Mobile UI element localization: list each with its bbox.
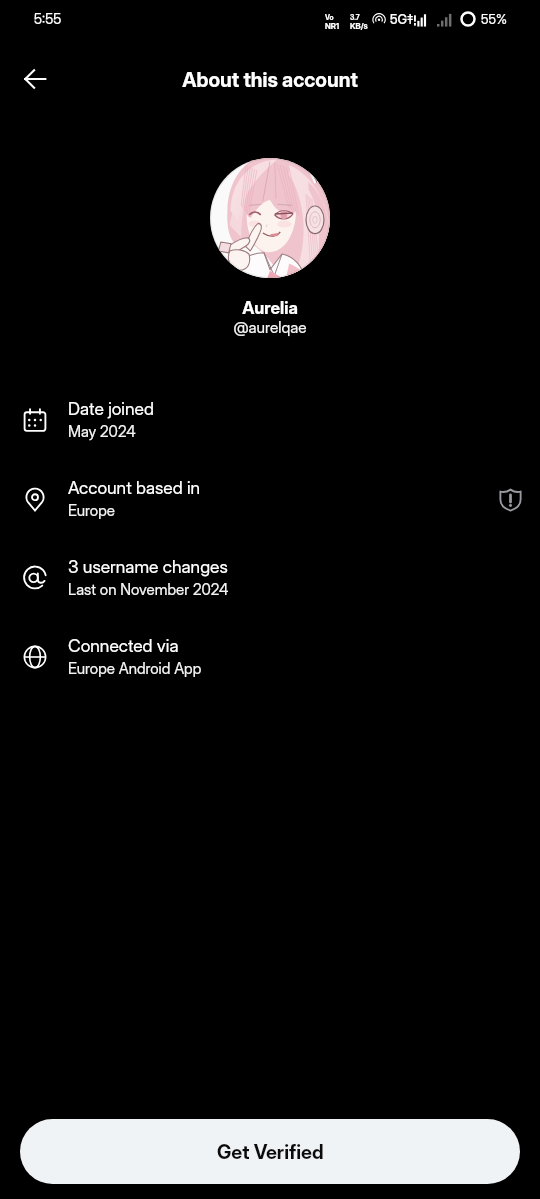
staticText: Account based in xyxy=(68,477,201,498)
staticText: 3.7 xyxy=(350,13,360,21)
staticText: NR1 xyxy=(325,21,340,31)
staticText: 5G‡ xyxy=(390,11,414,27)
button[interactable]: Date joined xyxy=(0,398,540,477)
staticText: Last on November 2024 xyxy=(68,580,229,598)
staticText: Vo xyxy=(325,13,334,21)
staticText: Europe xyxy=(68,501,115,519)
staticText: Date joined xyxy=(68,398,154,419)
staticText: 55% xyxy=(481,11,507,27)
staticText: Aurelia xyxy=(0,298,540,319)
button[interactable]: Account information xyxy=(492,481,528,517)
button[interactable]: Back xyxy=(13,57,57,101)
button[interactable]: Get Verified xyxy=(20,1119,520,1184)
staticText: @aurelqae xyxy=(0,318,540,337)
staticText: 3 username changes xyxy=(68,556,228,577)
staticText: KB/s xyxy=(350,21,368,31)
staticText: About this account xyxy=(0,68,540,92)
staticText: Get Verified xyxy=(217,1140,324,1164)
staticText: Europe Android App xyxy=(68,659,202,677)
staticText: Connected via xyxy=(68,635,179,656)
button[interactable]: Account based in xyxy=(0,477,540,556)
button[interactable]: Connected via xyxy=(0,635,540,714)
staticText: May 2024 xyxy=(68,422,136,440)
staticText: 5:55 xyxy=(34,10,62,27)
button[interactable]: 3 username changes xyxy=(0,556,540,635)
